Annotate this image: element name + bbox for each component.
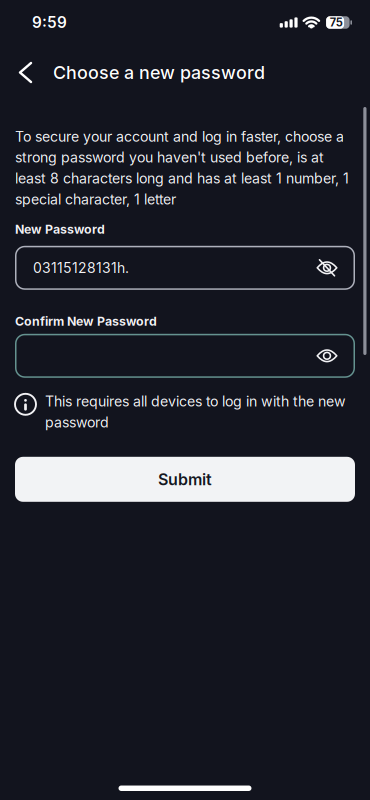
button[interactable]: Hide password [309, 247, 355, 289]
button[interactable]: New Password [15, 246, 355, 290]
button[interactable]: Confirm New Password [15, 334, 355, 378]
staticText: This requires all devices to log in with… [45, 393, 346, 431]
staticText: 75 [330, 16, 343, 29]
staticText: Choose a new password [53, 62, 265, 83]
staticText: 9:59 [32, 13, 67, 32]
staticText: Submit [158, 470, 212, 489]
button[interactable]: Show password [309, 335, 355, 377]
button[interactable]: Back [0, 51, 39, 94]
staticText: New Password [15, 222, 105, 237]
button[interactable]: Submit [15, 457, 355, 502]
staticText: Confirm New Password [15, 314, 157, 329]
staticText: To secure your account and log in faster… [15, 128, 349, 208]
staticText: 03115128131h. [33, 259, 129, 276]
